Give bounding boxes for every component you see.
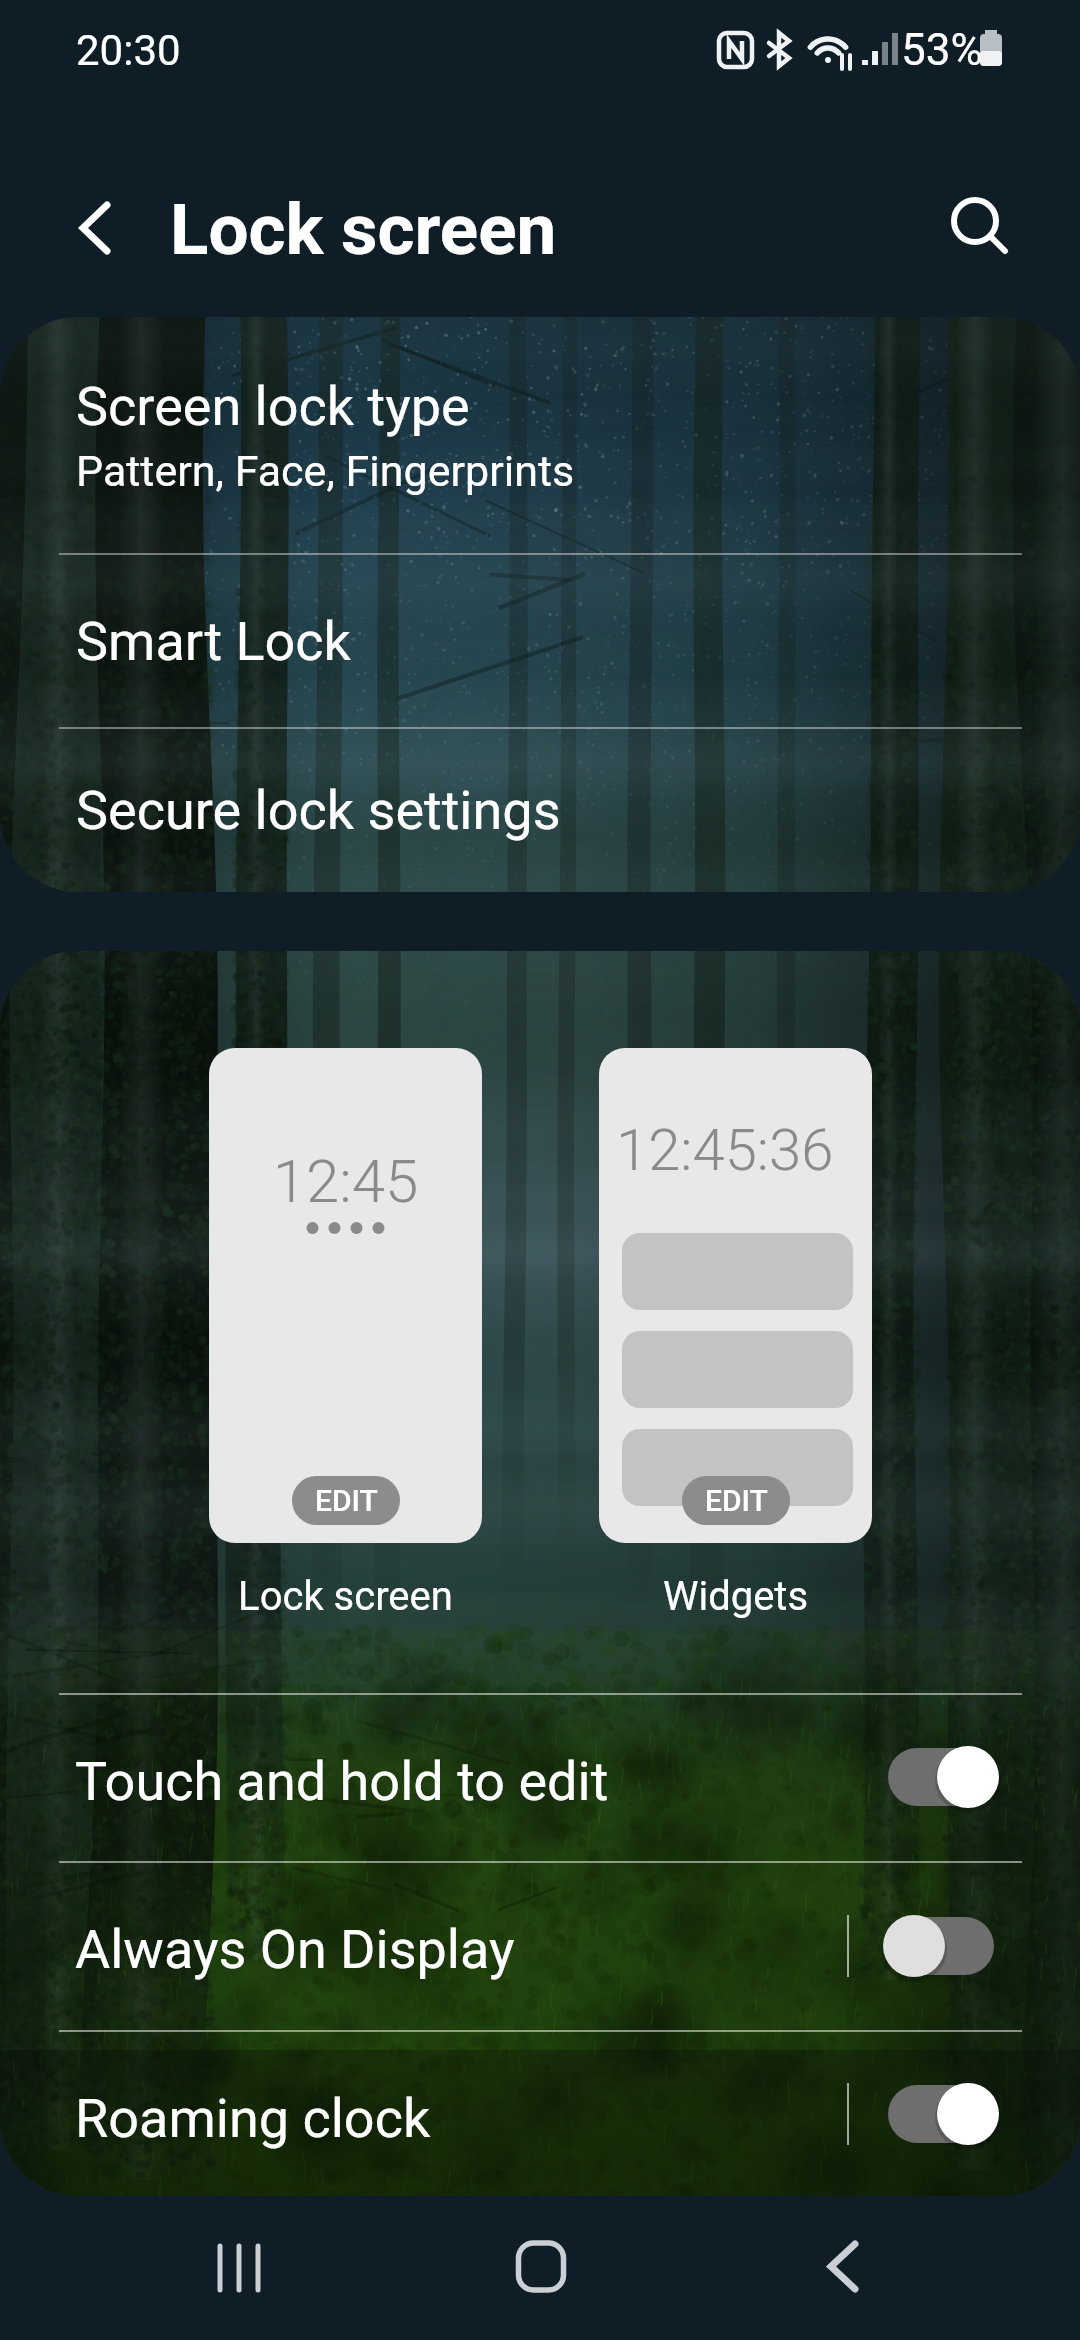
staticText: Smart Lock [76, 610, 351, 673]
staticText: Always On Display [75, 1918, 515, 1981]
staticText: 53% [901, 24, 983, 76]
button[interactable]: Search [939, 188, 1023, 272]
staticText: Pattern, Face, Fingerprints [76, 446, 575, 496]
staticText: Widgets [599, 1573, 872, 1620]
button[interactable]: 12:45 [209, 1048, 482, 1543]
button[interactable]: Always On Display [869, 1867, 1015, 2024]
staticText: 12:45:36 [616, 1116, 834, 1184]
button[interactable]: Secure lock settings [0, 729, 1080, 892]
staticText: Secure lock settings [76, 779, 561, 842]
staticText: Lock screen [209, 1573, 482, 1620]
button[interactable]: Home [473, 2216, 609, 2320]
button[interactable]: Touch and hold to edit [0, 1693, 1080, 1861]
button[interactable]: Recent apps [171, 2216, 307, 2320]
staticText: Touch and hold to edit [75, 1750, 609, 1813]
staticText: 12:45 [209, 1146, 482, 1216]
staticText: EDIT [315, 1483, 378, 1518]
staticText: EDIT [705, 1483, 768, 1518]
button[interactable]: 12:45:36 [599, 1048, 872, 1543]
button[interactable]: Back [775, 2216, 911, 2320]
button[interactable]: Touch and hold to edit [869, 1699, 1015, 1855]
button[interactable]: Navigate up [58, 186, 142, 270]
button[interactable]: Smart Lock [0, 555, 1080, 727]
button[interactable]: Screen lock type [0, 317, 1080, 553]
staticText: Roaming clock [75, 2087, 431, 2150]
staticText: Screen lock type [76, 375, 470, 438]
button[interactable]: EDIT [682, 1476, 790, 1525]
button[interactable]: Roaming clock [869, 2036, 1015, 2192]
button[interactable]: EDIT [292, 1476, 400, 1525]
button[interactable]: Roaming clock [0, 2030, 1080, 2196]
button[interactable]: Always On Display [0, 1861, 1080, 2030]
staticText: 20:30 [76, 26, 181, 75]
staticText: Lock screen [170, 188, 557, 271]
